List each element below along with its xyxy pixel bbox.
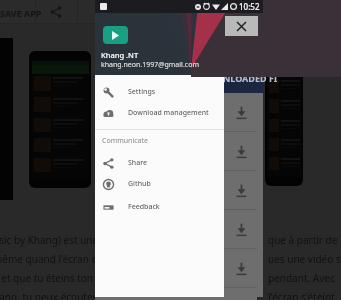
staticText: Download management (128, 108, 209, 118)
button[interactable]: Share (95, 153, 224, 173)
staticText: Settings (128, 87, 156, 97)
button[interactable]: Github (95, 174, 224, 194)
staticText: Feedback (128, 202, 160, 212)
staticText: khang.neon.1997@gmail.com (101, 60, 199, 70)
staticText: que à partir de (268, 233, 338, 247)
button[interactable]: Feedback (95, 197, 224, 217)
staticText: e et que tu éteins ton (0, 271, 93, 285)
staticText: hang, tu peux écouter (0, 290, 97, 300)
other: Share (50, 6, 62, 18)
staticText: Communicate (102, 136, 148, 146)
staticText: pendant. Avec (268, 271, 335, 285)
staticText: SAVE APP (0, 7, 42, 19)
staticText: l'écran s'éteint, (268, 290, 338, 300)
button[interactable]: Download management (95, 103, 224, 123)
staticText: Share (128, 158, 148, 168)
button[interactable]: Settings (95, 82, 224, 102)
staticText: Khang .NT (101, 50, 139, 60)
staticText: Github (128, 179, 151, 189)
staticText: usic by Khang) est une (0, 233, 99, 247)
staticText: ues une vidéo sur (268, 252, 341, 266)
staticText: 10:52 (239, 1, 260, 12)
staticText: même quand l'écran est (0, 252, 106, 266)
button[interactable]: Close (225, 16, 258, 36)
staticText: NLOADED FI (223, 72, 278, 84)
